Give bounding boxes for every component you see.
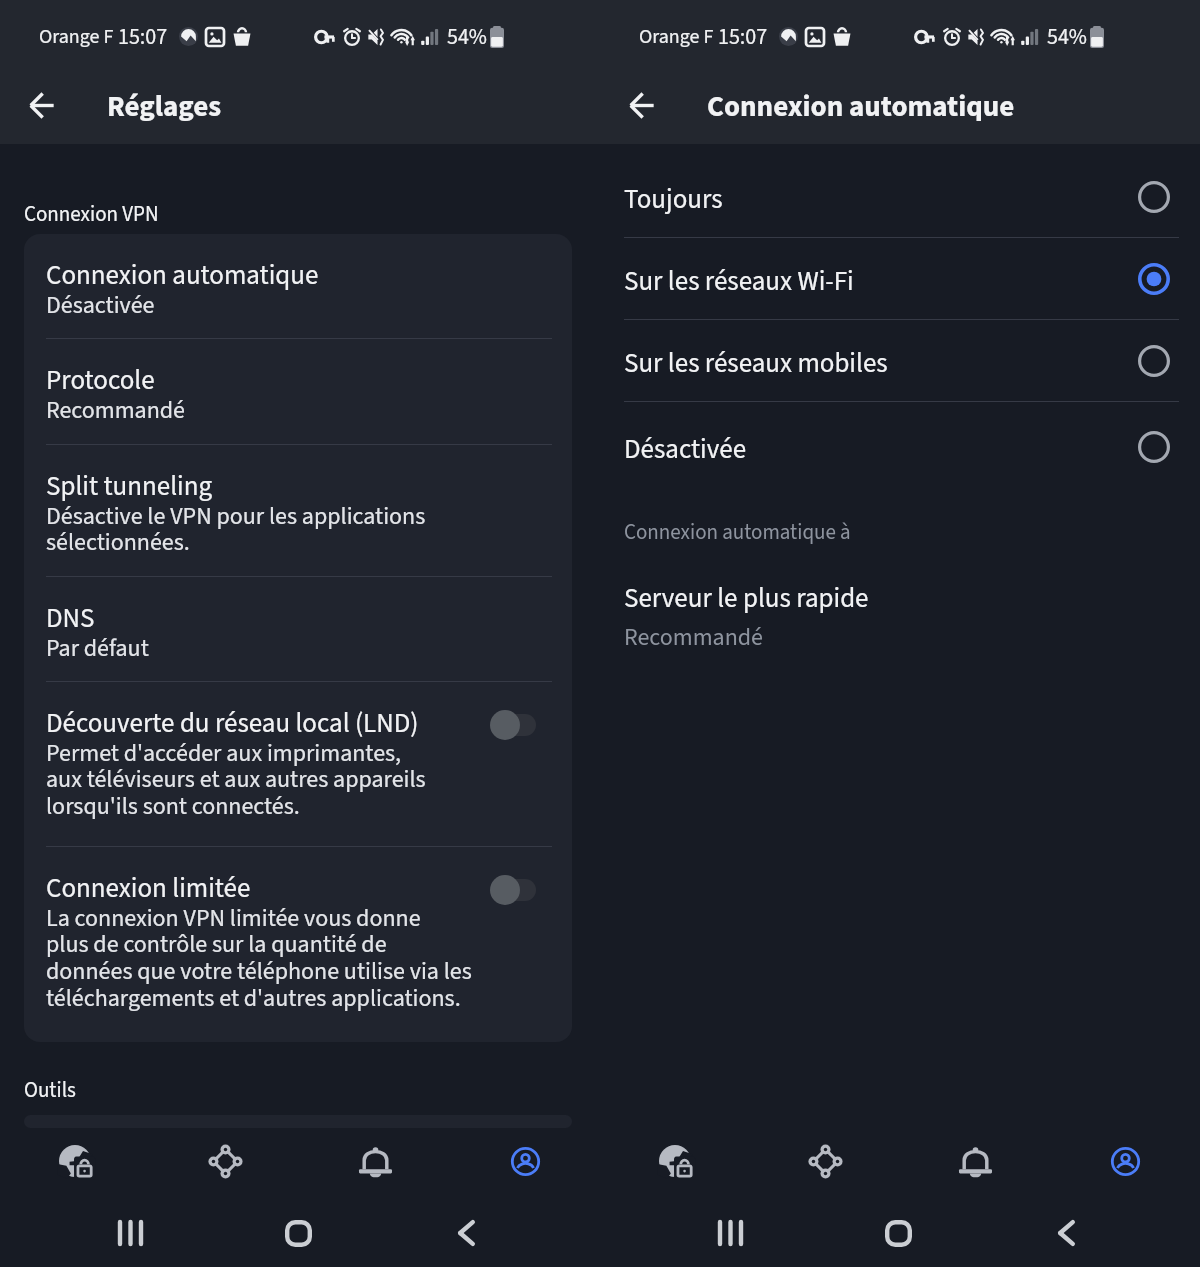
staticText: Désactivée [46,288,155,322]
button[interactable]: Activer [490,874,542,906]
staticText: Sur les réseaux mobiles [624,344,1138,382]
button[interactable]: Toujours [600,156,1200,237]
button[interactable]: Split tunneling [24,445,572,576]
button[interactable]: VPN [600,1128,750,1194]
staticText: Réglages [107,86,222,127]
staticText: Désactivée [624,430,1138,468]
staticText: Connexion automatique [707,86,1015,127]
button[interactable]: Retour [438,1205,494,1261]
staticText: Désactive le VPN pour les applications s… [46,499,426,560]
button[interactable]: Connexion automatique [24,234,572,338]
staticText: Split tunneling [46,467,213,505]
button[interactable]: Sur les réseaux Wi-Fi [600,238,1200,319]
button[interactable]: Retour [1038,1205,1094,1261]
button[interactable]: Compte [1050,1128,1200,1194]
button[interactable]: Connexion limitée [24,847,572,1042]
staticText: Permet d'accéder aux imprimantes, aux té… [46,736,426,824]
button[interactable]: Sur les réseaux mobiles [600,320,1200,401]
button[interactable]: Mesh Net [750,1128,900,1194]
staticText: Connexion automatique [46,256,319,294]
staticText: Serveur le plus rapide [624,579,869,617]
button[interactable]: Notifications [900,1128,1050,1194]
button[interactable]: Accueil [870,1205,926,1261]
staticText: DNS [46,599,95,637]
button[interactable]: VPN [0,1128,150,1194]
button[interactable]: Récents [702,1205,758,1261]
button[interactable]: Retour [613,77,669,133]
staticText: Orange F [639,23,714,51]
staticText: Connexion automatique à [624,517,851,547]
staticText: Protocole [46,361,155,399]
button[interactable]: Mesh Net [150,1128,300,1194]
button[interactable]: Accueil [270,1205,326,1261]
staticText: Connexion limitée [46,869,251,907]
button[interactable]: Activer [490,709,542,741]
button[interactable]: Protocole [24,339,572,444]
button[interactable]: Compte [450,1128,600,1194]
button[interactable]: Retour [13,77,69,133]
button[interactable]: Récents [102,1205,158,1261]
staticText: 54% [1047,21,1087,52]
staticText: Découverte du réseau local (LND) [46,704,419,742]
staticText: Sur les réseaux Wi-Fi [624,262,1138,300]
button[interactable]: Désactivée [600,402,1200,491]
button[interactable]: Notifications [300,1128,450,1194]
staticText: Recommandé [46,393,186,427]
button[interactable]: Découverte du réseau local (LND) [24,682,572,846]
staticText: 54% [447,21,487,52]
staticText: Par défaut [46,631,149,665]
staticText: Orange F [39,23,114,51]
staticText: Outils [24,1075,76,1105]
staticText: 15:07 [718,21,768,52]
button[interactable]: Serveur le plus rapide [600,579,1200,654]
button[interactable]: DNS [24,577,572,681]
staticText: Connexion VPN [24,199,159,229]
staticText: Toujours [624,180,1138,218]
staticText: Recommandé [624,620,764,654]
staticText: 15:07 [118,21,168,52]
staticText: La connexion VPN limitée vous donne plus… [46,901,472,1016]
